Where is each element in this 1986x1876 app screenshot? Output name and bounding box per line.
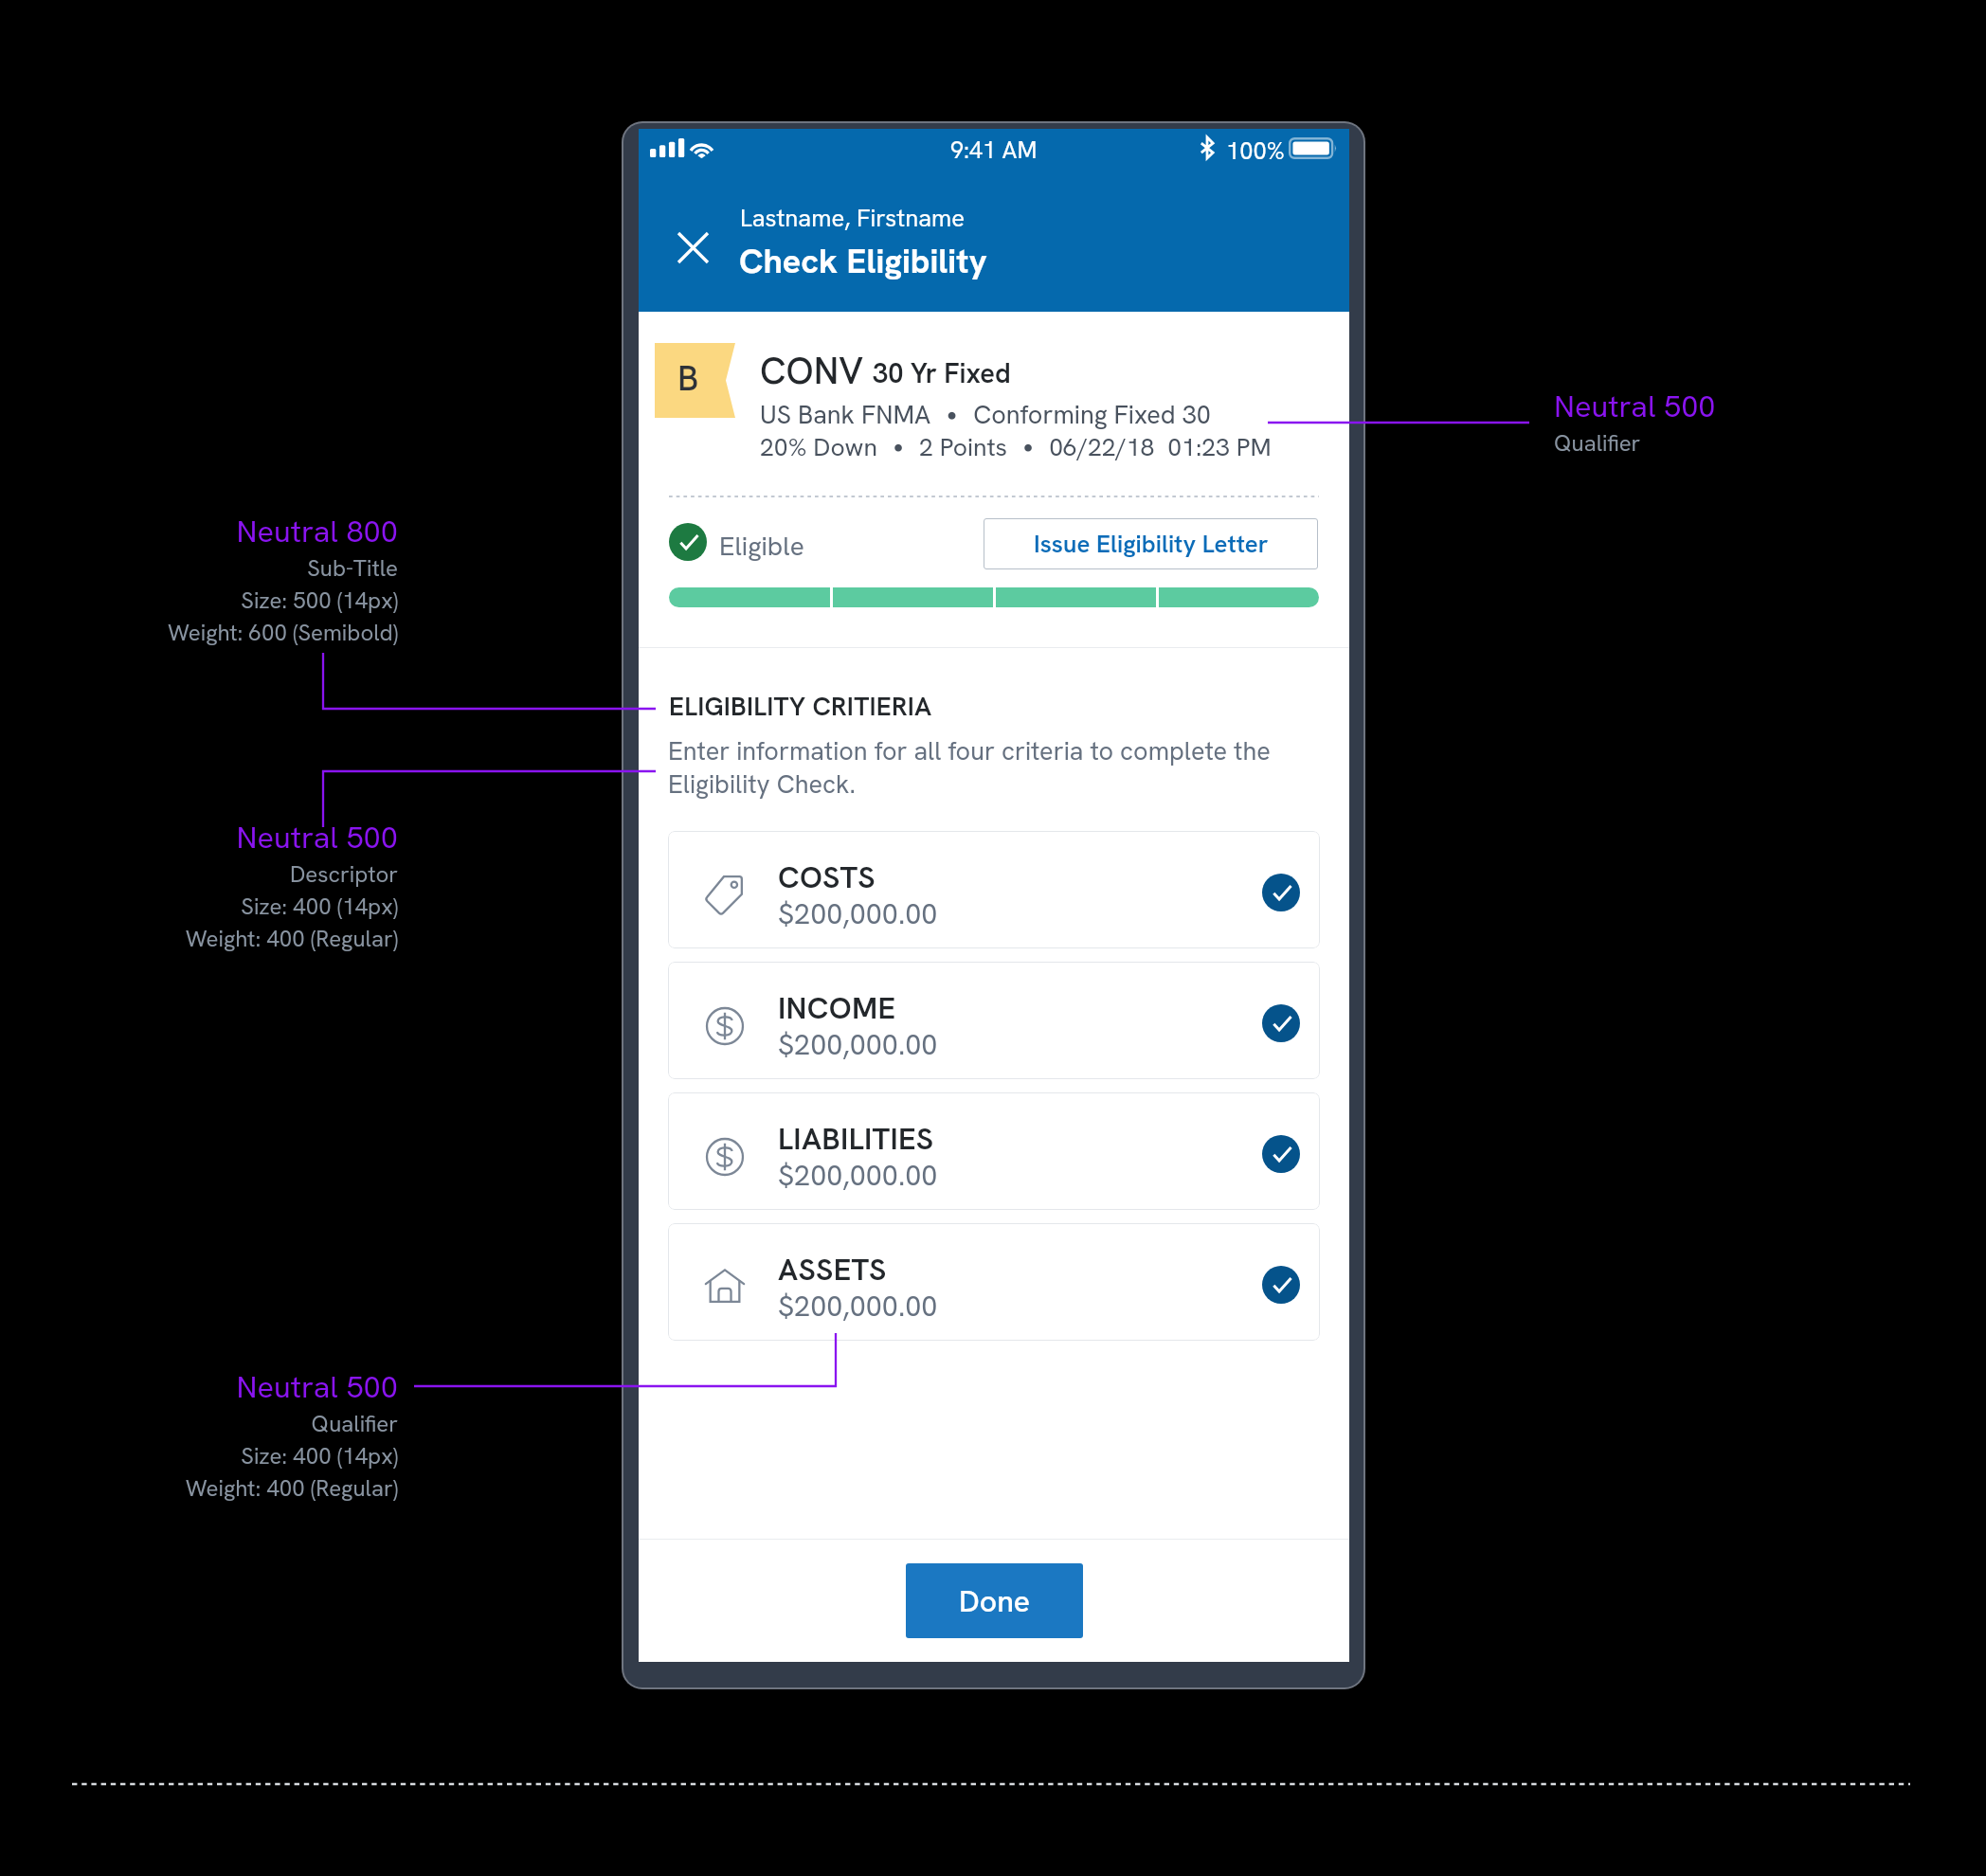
staticText: Check Eligibility: [739, 239, 987, 283]
staticText: Neutral 500: [1554, 386, 1716, 425]
button[interactable]: Close: [668, 223, 717, 272]
staticText: Weight: 400 (Regular): [185, 924, 398, 953]
staticText: Weight: 400 (Regular): [185, 1473, 398, 1503]
staticText: Weight: 600 (Semibold): [168, 618, 398, 647]
staticText: INCOME: [778, 988, 896, 1028]
staticText: Size: 400 (14px): [241, 1441, 398, 1470]
button[interactable]: COSTS: [668, 831, 1320, 948]
staticText: 9:41 AM: [950, 135, 1038, 166]
staticText: Qualifier: [311, 1409, 398, 1438]
button[interactable]: Issue Eligibility Letter: [984, 518, 1318, 569]
staticText: Neutral 500: [236, 1366, 398, 1406]
staticText: $200,000.00: [778, 894, 938, 932]
staticText: Lastname, Firstname: [740, 202, 965, 233]
staticText: Neutral 800: [236, 511, 398, 550]
staticText: Descriptor: [290, 859, 398, 889]
staticText: Neutral 500: [236, 817, 398, 857]
staticText: $200,000.00: [778, 1287, 938, 1325]
staticText: 30 Yr Fixed: [873, 355, 1011, 391]
staticText: Enter information for all four criteria …: [668, 734, 1297, 801]
staticText: ELIGIBILITY CRITIERIA: [669, 689, 932, 723]
staticText: Size: 400 (14px): [241, 892, 398, 921]
staticText: Issue Eligibility Letter: [1034, 528, 1269, 560]
staticText: Qualifier: [1554, 428, 1641, 458]
staticText: LIABILITIES: [778, 1119, 934, 1159]
staticText: 100%: [1226, 135, 1285, 166]
staticText: US Bank FNMA ∙ Conforming Fixed 30: [760, 398, 1211, 431]
staticText: 20% Down ∙ 2 Points ∙ 06/22/18 01:23 PM: [760, 430, 1272, 463]
button[interactable]: INCOME: [668, 962, 1320, 1079]
staticText: COSTS: [778, 857, 876, 897]
staticText: Sub-Title: [307, 553, 398, 583]
staticText: Eligible: [719, 529, 804, 563]
staticText: ASSETS: [778, 1250, 887, 1290]
staticText: $200,000.00: [778, 1156, 938, 1194]
staticText: Size: 500 (14px): [241, 586, 398, 615]
button[interactable]: Done: [906, 1563, 1083, 1638]
staticText: $200,000.00: [778, 1025, 938, 1063]
button[interactable]: LIABILITIES: [668, 1092, 1320, 1210]
staticText: B: [677, 355, 699, 401]
staticText: Done: [959, 1581, 1031, 1621]
staticText: CONV: [760, 347, 864, 395]
button[interactable]: ASSETS: [668, 1223, 1320, 1341]
